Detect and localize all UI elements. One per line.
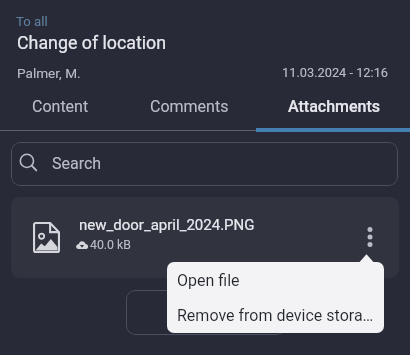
staticText: Palmer, M. [17, 65, 81, 81]
staticText: 40.0 kB [90, 238, 131, 252]
button[interactable]: Attachments [258, 93, 410, 131]
staticText: Search [52, 154, 102, 173]
staticText: Comments [150, 97, 229, 116]
staticText: 11.03.2024 - 12:16 [282, 65, 389, 80]
staticText: Change of location [17, 32, 167, 53]
staticText: Attachments [288, 97, 381, 116]
staticText: To all [16, 14, 48, 29]
button[interactable]: More options [355, 222, 385, 252]
staticText: Content [32, 97, 89, 116]
button[interactable]: Search [11, 142, 398, 186]
button[interactable]: Remove from device stora… [167, 297, 384, 333]
button[interactable]: Content [2, 93, 128, 131]
staticText: new_door_april_2024.PNG [79, 216, 255, 234]
button[interactable]: Open file [167, 262, 384, 297]
staticText: Download [173, 304, 240, 322]
staticText: Remove from device stora… [177, 306, 374, 325]
button[interactable]: Download [126, 290, 286, 335]
button[interactable]: Comments [120, 93, 253, 131]
button[interactable]: new_door_april_2024.PNG [11, 197, 399, 278]
staticText: Open file [177, 271, 240, 290]
